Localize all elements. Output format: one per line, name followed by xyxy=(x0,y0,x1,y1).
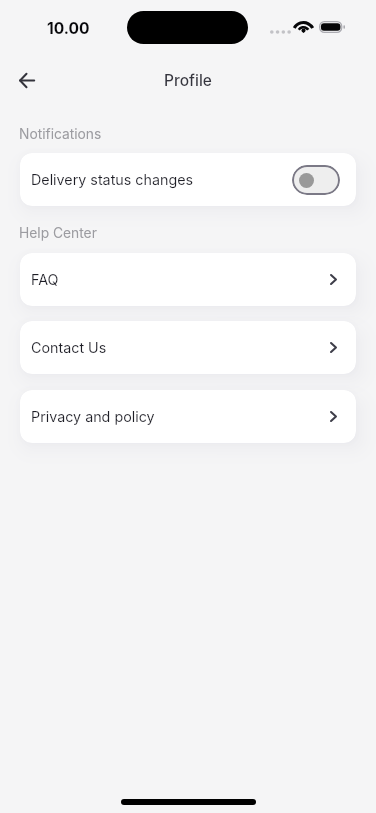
button[interactable]: Delivery status changes xyxy=(20,153,356,206)
button[interactable]: Privacy and policy xyxy=(20,390,356,443)
button[interactable]: Back xyxy=(7,60,47,100)
button[interactable]: FAQ xyxy=(20,253,356,306)
button[interactable]: Contact Us xyxy=(20,321,356,374)
staticText: 10.00 xyxy=(47,19,90,38)
staticText: Contact Us xyxy=(31,339,107,356)
button[interactable]: Delivery status changes toggle xyxy=(292,165,340,195)
staticText: Help Center xyxy=(19,225,97,242)
staticText: Notifications xyxy=(19,126,102,143)
staticText: Profile xyxy=(164,71,212,90)
staticText: FAQ xyxy=(31,271,59,288)
staticText: Privacy and policy xyxy=(31,408,155,425)
staticText: Delivery status changes xyxy=(31,171,194,188)
